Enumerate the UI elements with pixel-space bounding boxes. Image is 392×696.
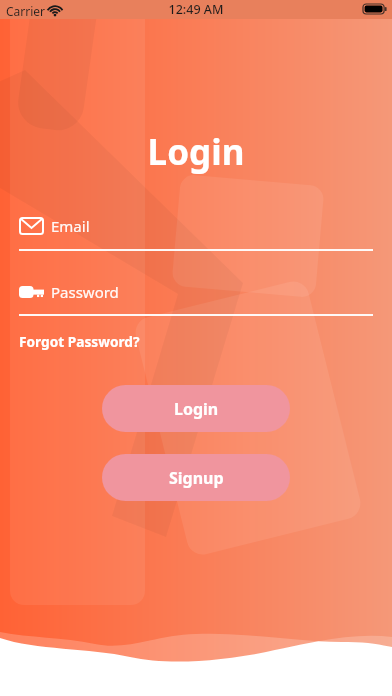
button[interactable]: Signup	[102, 454, 290, 501]
staticText: Email	[51, 216, 90, 236]
staticText: Login	[174, 398, 219, 420]
other: Password	[19, 286, 44, 298]
staticText: Login	[0, 128, 392, 176]
staticText: Password	[51, 282, 119, 302]
staticText: Forgot Password?	[19, 332, 140, 351]
button[interactable]: Login	[102, 385, 290, 432]
staticText: Carrier	[6, 3, 46, 19]
other: Wi-Fi signal	[47, 4, 63, 16]
staticText: Signup	[169, 467, 224, 489]
other: Email	[19, 217, 44, 235]
button[interactable]: Forgot Password?	[19, 331, 140, 352]
other: Battery	[363, 4, 387, 14]
staticText: 12:49 AM	[0, 1, 392, 18]
